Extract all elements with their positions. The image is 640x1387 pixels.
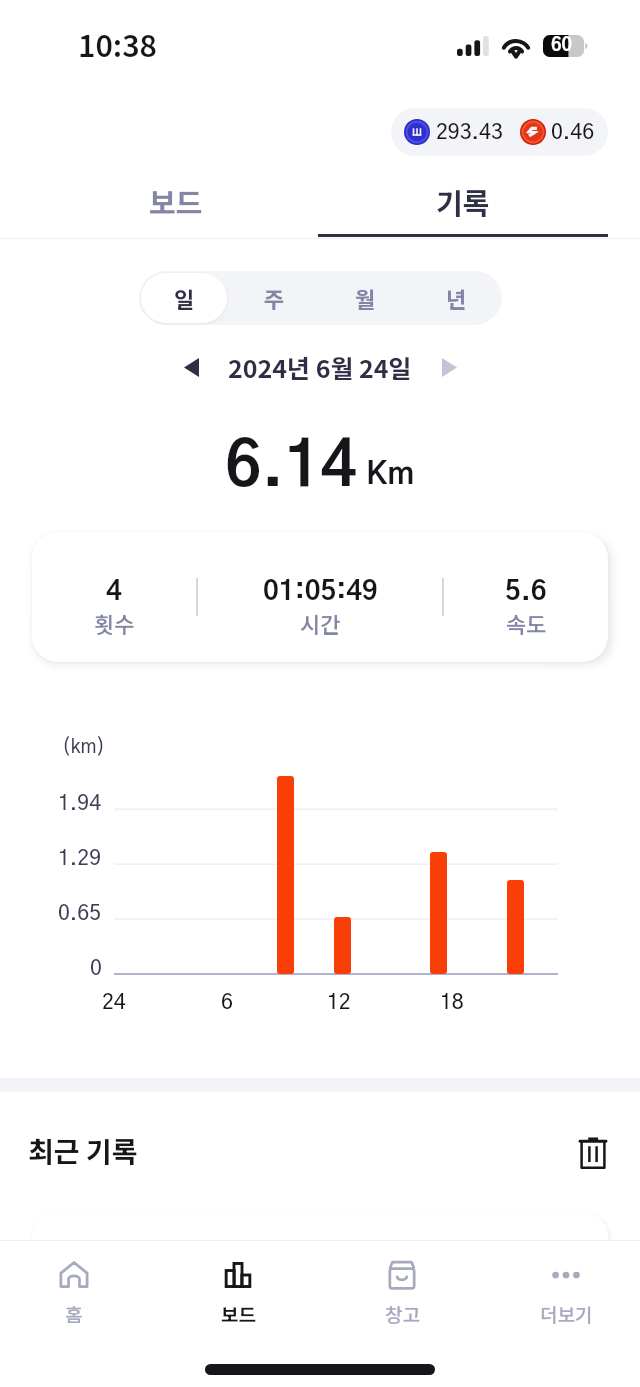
staticText: 창고 [385, 1300, 420, 1328]
staticText: 일 [174, 282, 195, 314]
staticText: 12 [327, 992, 351, 1013]
staticText: 0.65 [58, 903, 102, 924]
staticText: 60 [551, 37, 573, 55]
button[interactable]: Delete records [567, 1127, 619, 1179]
button[interactable]: 더보기 [486, 1241, 640, 1345]
button[interactable]: 293.43 [391, 108, 608, 156]
staticText: 1.29 [58, 848, 102, 869]
button[interactable]: 일 [141, 273, 227, 323]
staticText: 0.46 [551, 122, 595, 143]
staticText: 6 [221, 992, 233, 1013]
staticText: 기록 [436, 180, 490, 222]
staticText: 18 [440, 992, 464, 1013]
staticText: 주 [264, 282, 285, 314]
button[interactable]: Next day [428, 346, 470, 388]
staticText: 01:05:49 [263, 578, 378, 605]
staticText: 10:38 [78, 22, 157, 65]
button[interactable]: 보드 [32, 165, 320, 237]
staticText: 293.43 [436, 122, 503, 143]
staticText: 5.6 [505, 578, 547, 605]
button[interactable]: 홈 [0, 1241, 154, 1345]
staticText: Km [366, 459, 415, 490]
button[interactable]: 창고 [322, 1241, 482, 1345]
staticText: (km) [62, 738, 106, 757]
staticText: 0 [90, 958, 102, 979]
button[interactable]: 보드 [158, 1241, 318, 1345]
button[interactable]: 월 [322, 273, 409, 323]
staticText: 월 [355, 282, 376, 314]
staticText: 속도 [506, 607, 547, 639]
staticText: 횟수 [94, 607, 135, 639]
staticText: 최근 기록 [28, 1130, 138, 1171]
button[interactable]: 주 [231, 273, 318, 323]
staticText: 시간 [300, 607, 341, 639]
staticText: 24 [102, 992, 126, 1013]
staticText: 4 [106, 578, 122, 605]
staticText: 보드 [221, 1300, 256, 1328]
staticText: 6.14 [225, 437, 357, 499]
staticText: 보드 [149, 180, 203, 222]
button[interactable]: Previous day [170, 346, 212, 388]
button[interactable]: 년 [413, 273, 500, 323]
staticText: 홈 [65, 1300, 83, 1328]
staticText: 더보기 [540, 1300, 593, 1328]
button[interactable]: 기록 [318, 165, 608, 237]
staticText: 1.94 [58, 793, 102, 814]
staticText: 2024년 6월 24일 [228, 349, 412, 385]
staticText: 년 [446, 282, 467, 314]
